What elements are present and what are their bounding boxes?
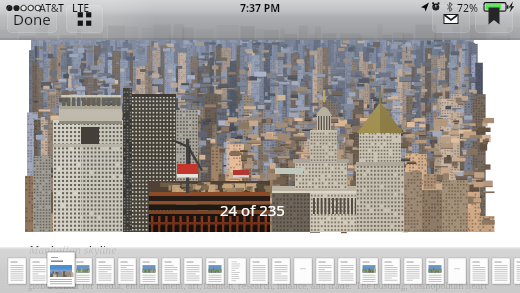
button[interactable]: Bookmark xyxy=(475,5,513,33)
staticText: 72% xyxy=(457,1,478,15)
staticText: Manhattan skyline xyxy=(29,243,117,257)
button[interactable]: Share by mail xyxy=(432,5,470,33)
staticText: Done xyxy=(13,9,51,29)
button[interactable]: Page grid xyxy=(66,5,103,33)
button[interactable]: Done xyxy=(7,5,57,33)
staticText: LTE xyxy=(72,1,90,15)
staticText: 24 of 235 xyxy=(220,200,285,220)
staticText: global center for media, entertainment, … xyxy=(28,280,488,291)
button[interactable] xyxy=(0,247,520,293)
staticText: 7:37 PM xyxy=(240,1,281,15)
staticText: AT&T xyxy=(39,1,64,15)
